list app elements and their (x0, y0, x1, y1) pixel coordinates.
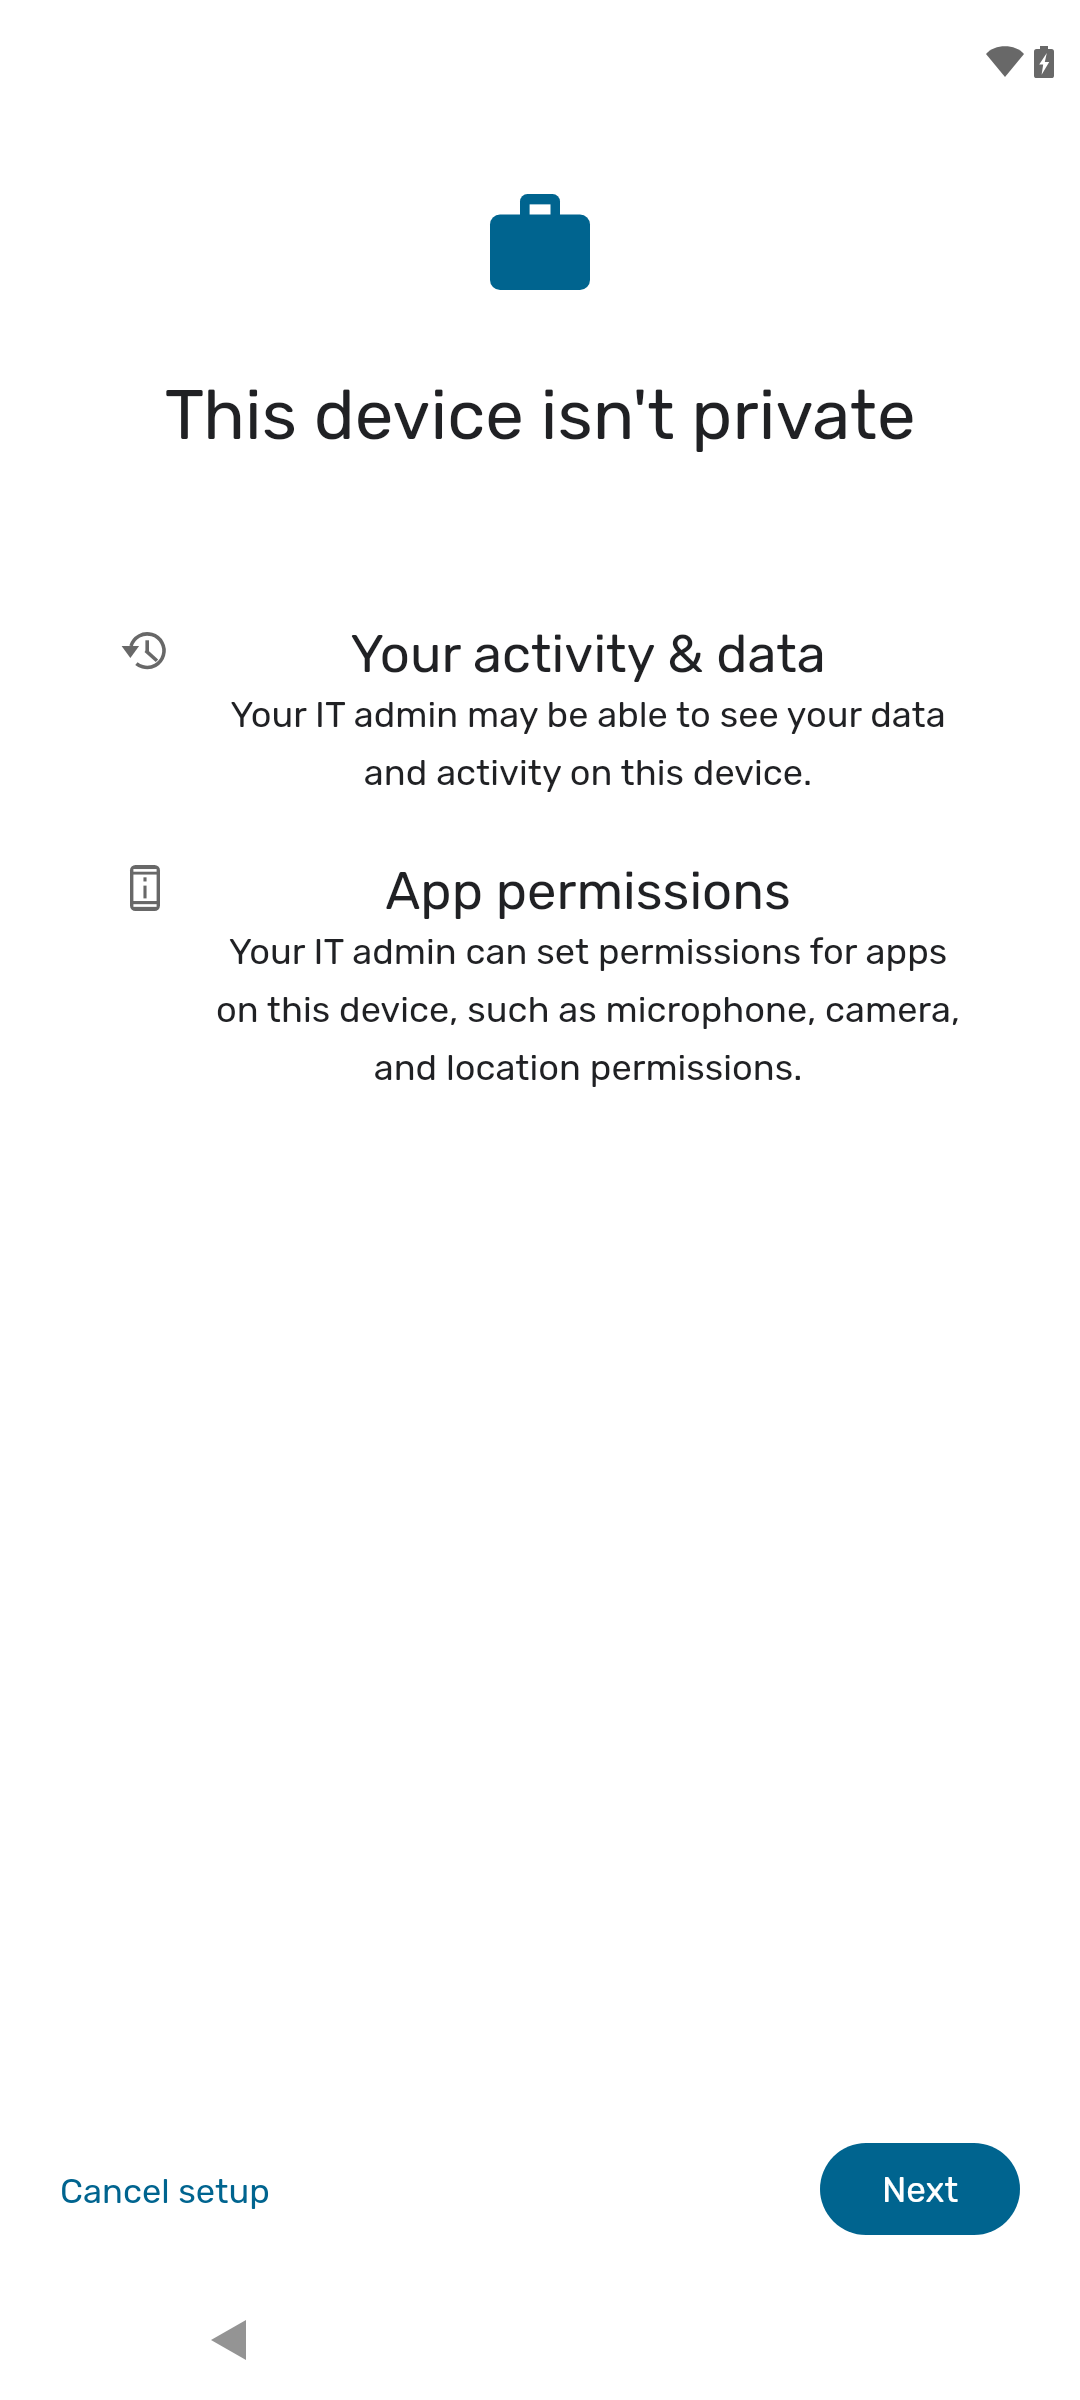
staticText: App permissions (207, 860, 969, 922)
staticText: Your IT admin may be able to see your da… (207, 693, 969, 794)
button[interactable]: Back (184, 2296, 272, 2384)
staticText: Your activity & data (207, 623, 969, 685)
staticText: This device isn't private (0, 374, 1080, 456)
staticText: Your IT admin can set permissions for ap… (207, 930, 969, 1089)
staticText: Next (882, 2169, 959, 2210)
button[interactable]: Cancel setup (36, 2155, 294, 2228)
staticText: Cancel setup (60, 2171, 270, 2212)
button[interactable]: Next (820, 2143, 1020, 2235)
